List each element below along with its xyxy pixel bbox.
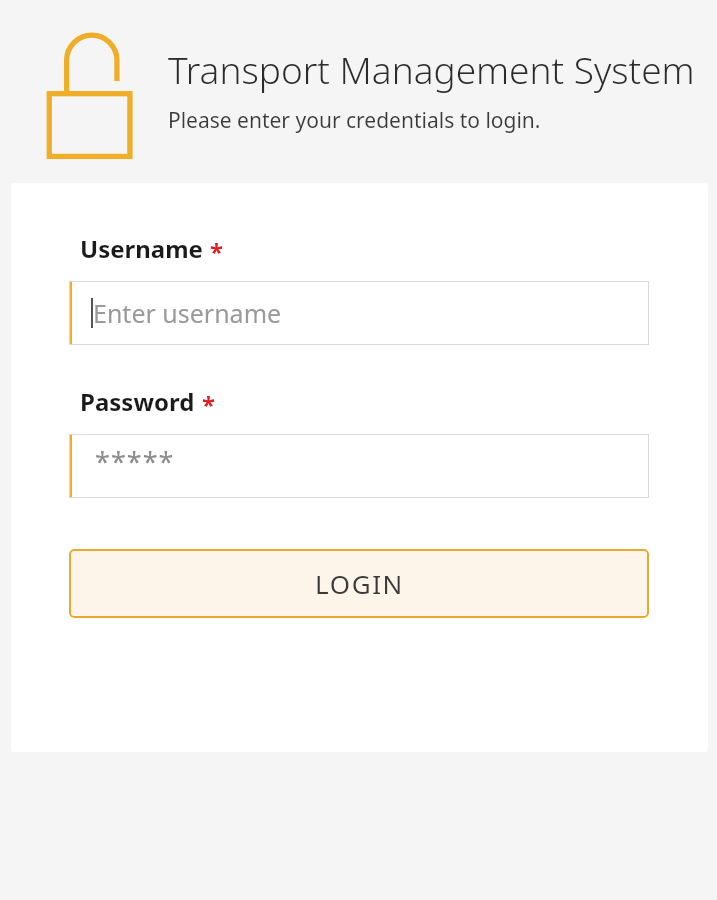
staticText: Transport Management System [168,44,695,94]
staticText: Username [80,232,203,265]
button[interactable]: LOGIN [69,549,649,618]
button[interactable]: ***** [69,434,649,498]
staticText: LOGIN [315,566,404,601]
button[interactable]: Enter username [69,281,649,345]
staticText: * [202,388,216,421]
staticText: * [210,235,224,268]
staticText: Enter username [93,296,282,330]
staticText: Please enter your credentials to login. [168,106,541,135]
staticText: Password [80,385,195,418]
staticText: ***** [95,443,175,480]
